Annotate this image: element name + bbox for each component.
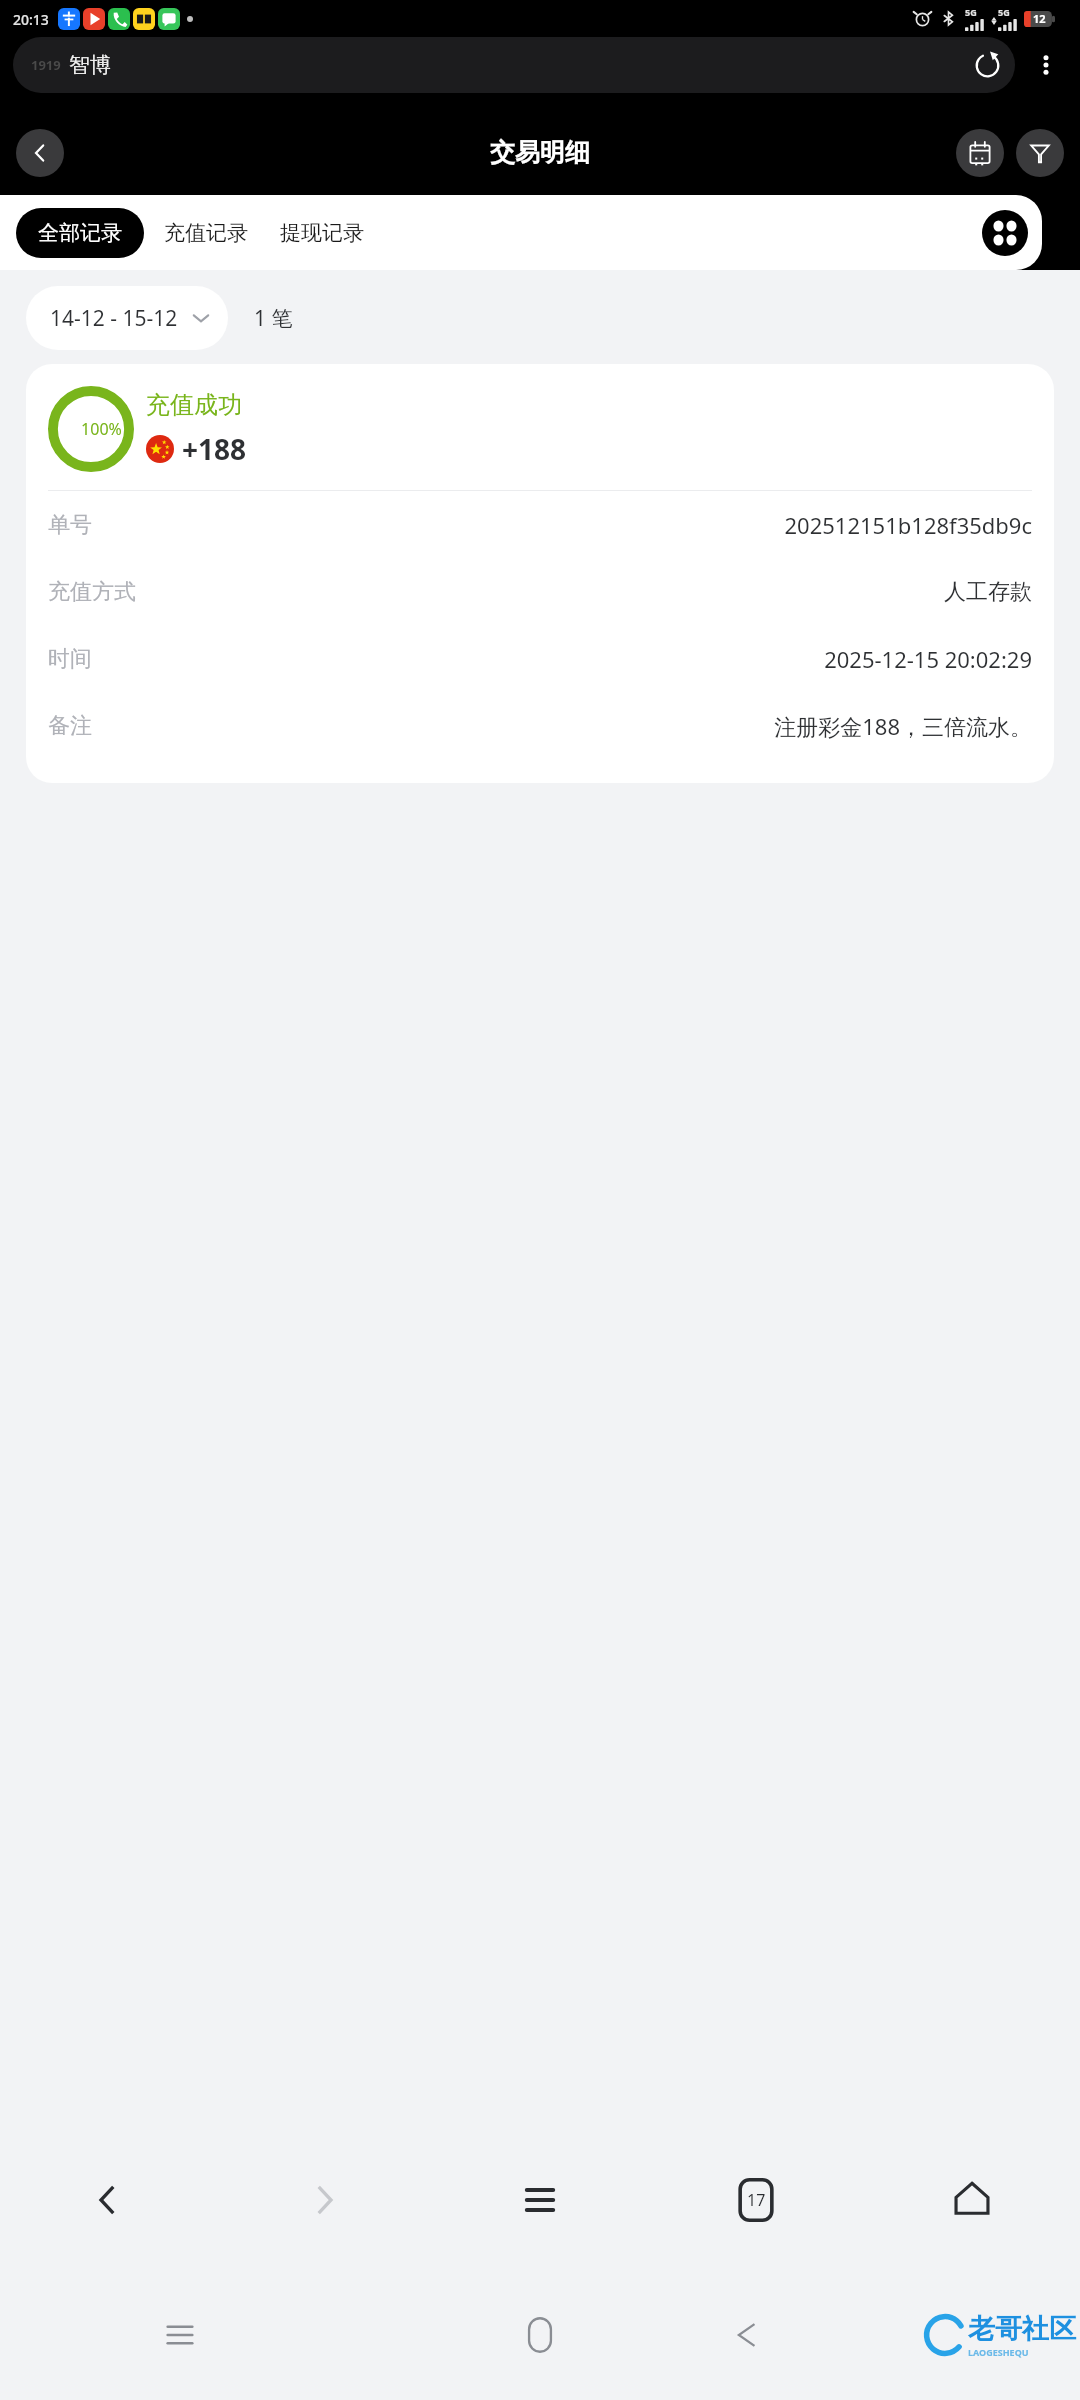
staticText: 充值成功 bbox=[146, 390, 242, 420]
button[interactable]: 全部记录 bbox=[16, 208, 144, 258]
staticText: 12 bbox=[1033, 11, 1046, 26]
button[interactable]: Grid view bbox=[982, 210, 1028, 256]
staticText: 17 bbox=[747, 2189, 766, 2211]
staticText: 5G bbox=[965, 6, 977, 18]
staticText: 20:13 bbox=[13, 10, 49, 29]
staticText: 智博 bbox=[69, 52, 111, 78]
button[interactable]: Menu bbox=[432, 2130, 648, 2270]
staticText: 交易明细 bbox=[490, 137, 590, 168]
staticText: 人工存款 bbox=[944, 578, 1032, 606]
staticText: 1 笔 bbox=[254, 304, 293, 333]
other: Bluetooth bbox=[941, 11, 956, 26]
button[interactable]: Home bbox=[864, 2130, 1080, 2270]
button[interactable]: Recent apps bbox=[0, 2270, 360, 2400]
staticText: 1919 bbox=[31, 56, 61, 74]
staticText: 充值记录 bbox=[164, 220, 248, 246]
staticText: 注册彩金188，三倍流水。 bbox=[774, 711, 1032, 741]
staticText: 202512151b128f35db9c bbox=[784, 510, 1032, 540]
button[interactable]: Tabs bbox=[648, 2130, 864, 2270]
button[interactable]: 1919 bbox=[13, 37, 1015, 93]
button[interactable]: Back bbox=[16, 129, 64, 177]
staticText: 全部记录 bbox=[38, 220, 122, 246]
button[interactable]: Select date bbox=[956, 129, 1004, 177]
button[interactable]: 100% bbox=[26, 364, 1054, 783]
button[interactable]: Back bbox=[0, 2130, 216, 2270]
staticText: +188 bbox=[182, 430, 247, 468]
staticText: LAOGESHEQU bbox=[968, 2346, 1029, 2358]
staticText: 100% bbox=[81, 418, 122, 440]
staticText: 2025-12-15 20:02:29 bbox=[824, 644, 1032, 674]
button[interactable]: 提现记录 bbox=[268, 210, 376, 256]
staticText: 5G bbox=[998, 6, 1010, 18]
button[interactable]: More options bbox=[1025, 44, 1067, 86]
staticText: 充值方式 bbox=[48, 578, 136, 606]
staticText: 时间 bbox=[48, 645, 92, 673]
button[interactable]: Filter bbox=[1016, 129, 1064, 177]
button[interactable]: 充值记录 bbox=[144, 210, 268, 256]
button[interactable]: Back bbox=[720, 2270, 1080, 2400]
staticText: 提现记录 bbox=[280, 220, 364, 246]
button[interactable]: Home bbox=[360, 2270, 720, 2400]
button[interactable]: 14-12 - 15-12 bbox=[26, 286, 228, 350]
staticText: 单号 bbox=[48, 511, 92, 539]
other: Refresh bbox=[974, 52, 1001, 79]
staticText: 备注 bbox=[48, 712, 92, 740]
staticText: 14-12 - 15-12 bbox=[50, 304, 178, 333]
staticText: 老哥社区 bbox=[968, 2312, 1076, 2346]
other: Alarm bbox=[914, 10, 931, 27]
